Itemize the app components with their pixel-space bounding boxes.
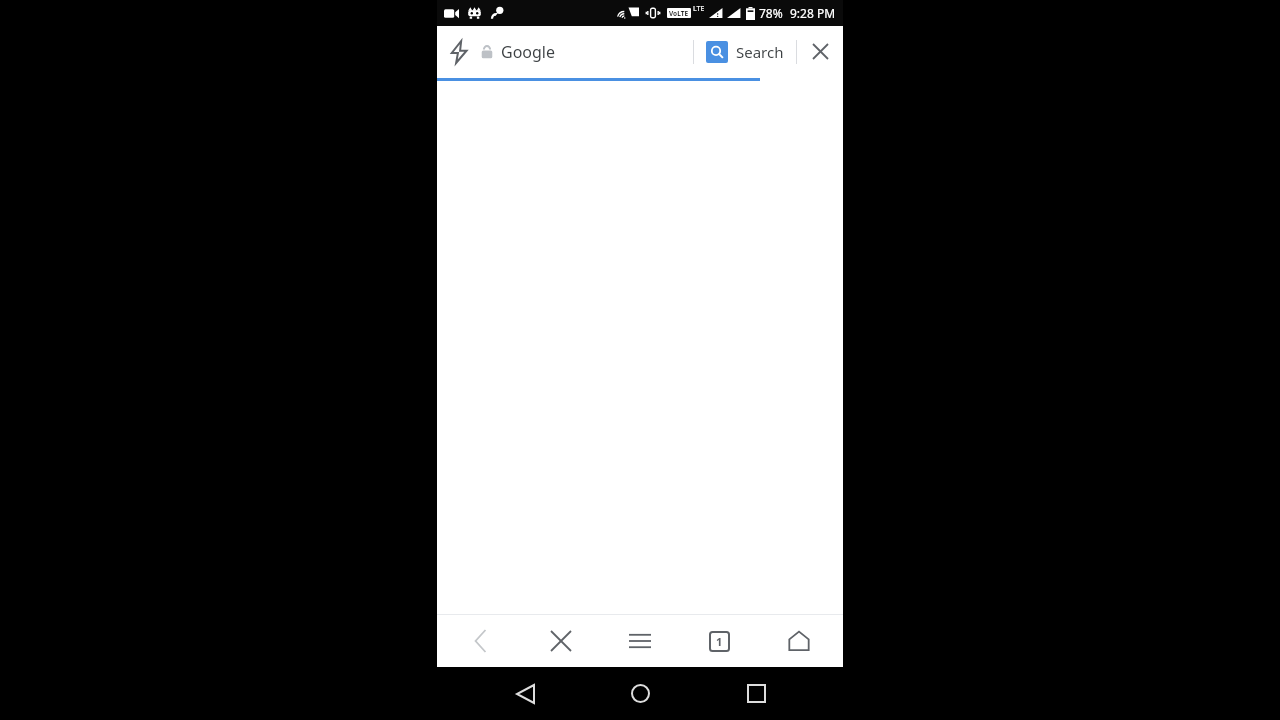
button[interactable]: Google [481,26,693,77]
button[interactable]: Search [706,26,784,77]
staticText: VoLTE [669,9,689,18]
staticText: LTE [693,4,705,14]
button[interactable]: Back [446,615,516,667]
staticText: 1 [716,634,723,649]
button[interactable]: Recents [728,667,784,720]
button[interactable]: Menu [605,615,675,667]
staticText: 9:28 PM [790,5,836,21]
button[interactable]: Home [612,667,668,720]
button[interactable]: Home [764,615,834,667]
button[interactable]: Back [497,667,553,720]
button[interactable]: Stop loading [526,615,596,667]
button[interactable]: Tabs, 1 open [684,615,754,667]
staticText: Search [736,42,784,62]
staticText: 78% [759,5,783,21]
button[interactable]: AMP page [437,26,481,77]
staticText: Google [501,41,556,63]
button[interactable]: Close [797,26,843,77]
